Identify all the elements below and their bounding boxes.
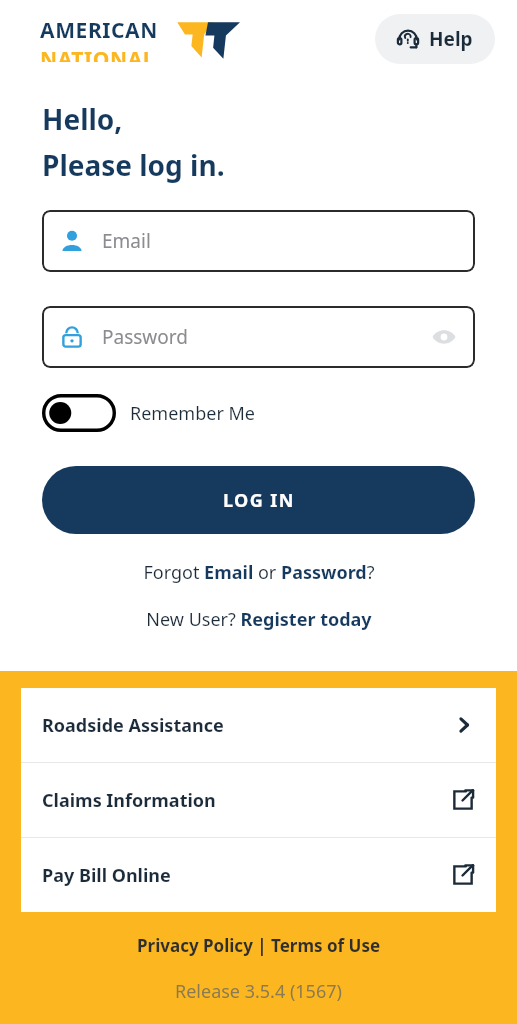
button[interactable]: Roadside Assistance bbox=[21, 688, 496, 762]
staticText: LOG IN bbox=[223, 488, 295, 513]
button[interactable]: LOG IN bbox=[42, 466, 475, 534]
staticText: Please log in. bbox=[42, 146, 225, 184]
button[interactable]: New User? Register today bbox=[0, 607, 517, 632]
staticText: Pay Bill Online bbox=[42, 863, 171, 888]
other: Open external link bbox=[451, 863, 475, 887]
staticText: Help bbox=[429, 26, 473, 52]
other: Help bbox=[397, 28, 419, 50]
staticText: Release 3.5.4 (1567) bbox=[175, 979, 342, 1004]
button[interactable]: Privacy Policy | Terms of Use bbox=[0, 934, 517, 957]
staticText: Password bbox=[102, 324, 188, 350]
staticText: AMERICAN bbox=[40, 16, 158, 45]
staticText: New User? Register today bbox=[146, 607, 372, 632]
button[interactable]: Password bbox=[42, 306, 475, 368]
button[interactable]: Forgot Email or Password? bbox=[0, 560, 517, 585]
staticText: Hello, bbox=[42, 100, 123, 138]
staticText: Roadside Assistance bbox=[42, 713, 224, 738]
button[interactable]: Remember Me bbox=[42, 394, 255, 432]
staticText: Privacy Policy | Terms of Use bbox=[137, 934, 381, 957]
other: Open Roadside Assistance bbox=[453, 714, 475, 736]
staticText: NATIONAL bbox=[40, 45, 156, 62]
staticText: Remember Me bbox=[130, 401, 255, 426]
button[interactable]: Help bbox=[375, 14, 495, 64]
staticText: Claims Information bbox=[42, 788, 216, 813]
other: Open external link bbox=[451, 788, 475, 812]
staticText: Email bbox=[102, 228, 151, 254]
button[interactable]: Email bbox=[42, 210, 475, 272]
button[interactable]: Show password bbox=[431, 324, 457, 350]
button[interactable]: Claims Information bbox=[21, 763, 496, 837]
staticText: Forgot Email or Password? bbox=[143, 560, 375, 585]
button[interactable]: Pay Bill Online bbox=[21, 838, 496, 912]
